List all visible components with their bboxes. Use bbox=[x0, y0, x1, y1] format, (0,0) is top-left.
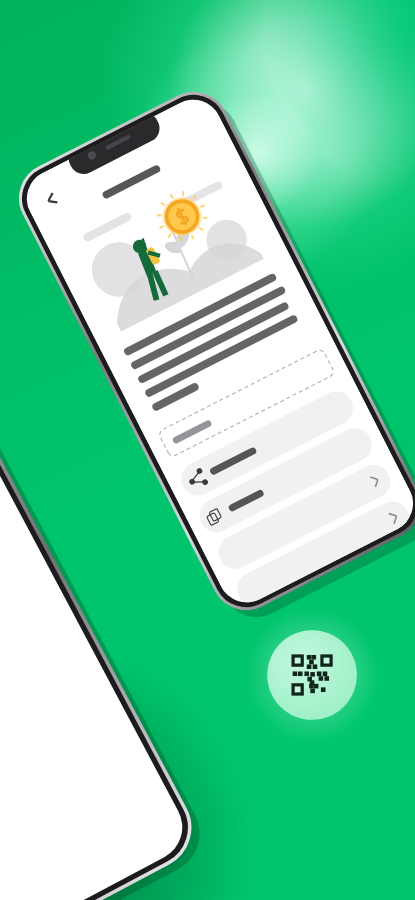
button[interactable]: Scan QR code bbox=[0, 0, 415, 900]
